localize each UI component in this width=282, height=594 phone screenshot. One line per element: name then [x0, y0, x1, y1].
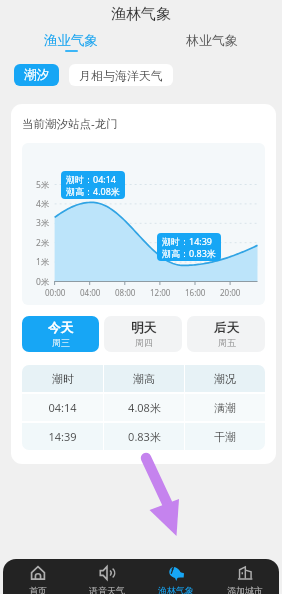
staticText: 月相与海洋天气 [79, 68, 163, 83]
staticText: 12:00 [150, 287, 171, 298]
staticText: 潮高 [133, 372, 155, 386]
button[interactable]: 林业气象 [141, 28, 282, 56]
staticText: 今天 [48, 320, 73, 336]
staticText: 20:00 [220, 287, 241, 298]
button[interactable]: 潮汐 [14, 64, 59, 86]
staticText: 5米 [36, 179, 50, 191]
staticText: 4米 [36, 198, 50, 210]
button[interactable]: 明天 [104, 316, 182, 352]
staticText: 0.83米 [128, 429, 161, 444]
button[interactable]: 今天 [22, 316, 99, 352]
staticText: 潮况 [214, 372, 236, 386]
staticText: 4.08米 [128, 400, 161, 415]
staticText: 后天 [214, 320, 239, 336]
staticText: 周四 [135, 337, 153, 348]
staticText: 00:00 [45, 287, 66, 298]
button[interactable]: 渔业气象 [0, 28, 141, 56]
staticText: 首页 [29, 585, 47, 594]
staticText: 04:14 [48, 400, 77, 415]
staticText: 08:00 [115, 287, 136, 298]
staticText: 潮高：0.83米 [162, 247, 216, 259]
staticText: 0米 [36, 276, 50, 288]
staticText: 渔业气象 [44, 32, 98, 49]
staticText: 语音天气 [89, 585, 125, 594]
button[interactable]: 后天 [187, 316, 265, 352]
button[interactable]: 月相与海洋天气 [69, 64, 173, 86]
staticText: 潮时：04:14 [66, 173, 117, 185]
staticText: 满潮 [214, 401, 236, 415]
staticText: 潮时 [52, 372, 74, 386]
staticText: 干潮 [214, 430, 236, 444]
staticText: 14:39 [48, 429, 77, 444]
staticText: 潮汐 [24, 67, 49, 83]
button[interactable]: 添加城市 [210, 559, 279, 594]
button[interactable]: 渔林气象 [141, 559, 210, 594]
staticText: 林业气象 [186, 32, 238, 48]
staticText: 1米 [36, 256, 50, 268]
staticText: 添加城市 [227, 585, 263, 594]
staticText: 2米 [36, 237, 50, 249]
staticText: 明天 [131, 320, 156, 336]
staticText: 3米 [36, 217, 50, 229]
staticText: 04:00 [80, 287, 101, 298]
staticText: 当前潮汐站点-龙门 [22, 116, 118, 132]
staticText: 渔林气象 [158, 585, 194, 594]
button[interactable]: 语音天气 [72, 559, 141, 594]
staticText: 周三 [52, 337, 70, 348]
button[interactable]: 首页 [3, 559, 72, 594]
staticText: 16:00 [185, 287, 206, 298]
staticText: 潮时：14:39 [162, 235, 213, 247]
staticText: 潮高：4.08米 [66, 185, 120, 197]
staticText: 周五 [218, 337, 236, 348]
staticText: 渔林气象 [111, 5, 171, 24]
